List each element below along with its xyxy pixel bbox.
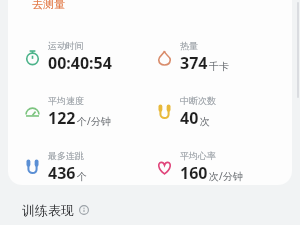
- staticText: 00:40:54: [48, 52, 112, 74]
- other: 中断次数: [156, 104, 173, 121]
- staticText: 374: [180, 52, 208, 74]
- other: Info: [79, 205, 89, 215]
- staticText: 平均速度: [48, 95, 84, 106]
- staticText: 122: [48, 107, 76, 129]
- button[interactable]: 运动时间: [0, 40, 150, 74]
- staticText: 中断次数: [180, 95, 216, 106]
- other: 平均速度: [24, 104, 41, 121]
- staticText: 平均心率: [180, 150, 216, 161]
- staticText: 40: [180, 107, 199, 129]
- staticText: 运动时间: [48, 40, 84, 51]
- button[interactable]: 去测量: [30, 0, 67, 12]
- button[interactable]: 最多连跳: [0, 150, 150, 184]
- staticText: 次: [200, 115, 210, 128]
- staticText: 个: [77, 170, 87, 183]
- other: 运动时间: [24, 49, 41, 66]
- staticText: 训练表现: [22, 202, 74, 218]
- staticText: 次/分钟: [209, 169, 243, 183]
- other: 平均心率: [156, 159, 173, 176]
- staticText: 160: [180, 162, 208, 184]
- staticText: 热量: [180, 40, 198, 51]
- button[interactable]: 中断次数: [150, 95, 300, 129]
- staticText: 436: [48, 162, 76, 184]
- staticText: 去测量: [32, 0, 65, 11]
- staticText: 最多连跳: [48, 150, 84, 161]
- staticText: 个/分钟: [77, 114, 111, 128]
- other: 最多连跳: [24, 159, 41, 176]
- button[interactable]: 热量: [150, 40, 300, 74]
- staticText: 千卡: [209, 60, 229, 73]
- button[interactable]: 平均速度: [0, 95, 150, 129]
- button[interactable]: 训练表现: [20, 200, 91, 220]
- button[interactable]: 平均心率: [150, 150, 300, 184]
- other: 热量: [156, 49, 173, 66]
